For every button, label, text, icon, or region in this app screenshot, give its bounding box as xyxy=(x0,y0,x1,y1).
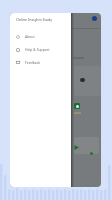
button[interactable]: About xyxy=(10,30,71,43)
staticText: Help & Support xyxy=(25,47,50,52)
staticText: Feedback xyxy=(25,60,41,65)
button[interactable]: Help & Support xyxy=(10,43,71,56)
staticText: Online Insights Study xyxy=(16,17,53,22)
staticText: About xyxy=(25,34,35,39)
button[interactable]: Feedback xyxy=(10,56,71,69)
